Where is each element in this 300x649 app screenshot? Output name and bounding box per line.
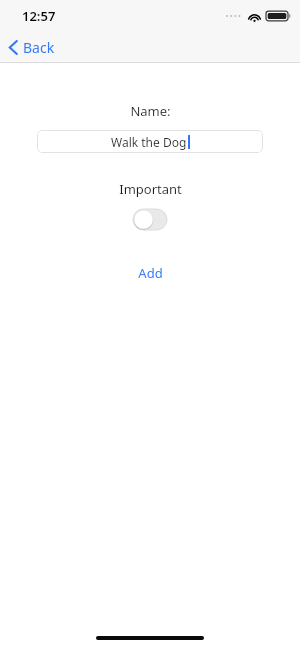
staticText: Back <box>23 38 55 57</box>
button[interactable]: Add <box>124 260 177 286</box>
staticText: 12:57 <box>22 7 56 25</box>
staticText: Important <box>119 180 182 198</box>
button[interactable]: Back <box>0 35 67 60</box>
button[interactable]: Important toggle, off <box>133 209 167 230</box>
staticText: Name: <box>130 102 171 120</box>
button[interactable]: Walk the Dog <box>37 130 263 153</box>
staticText: Add <box>138 264 163 282</box>
staticText: Walk the Dog <box>111 134 187 150</box>
